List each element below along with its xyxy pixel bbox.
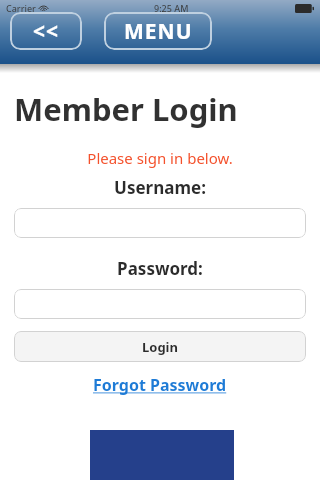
staticText: 9:25 AM (154, 2, 189, 14)
staticText: Carrier (6, 2, 36, 14)
button[interactable] (14, 208, 306, 238)
staticText: Please sign in below. (14, 148, 306, 168)
staticText: MENU (124, 17, 193, 46)
staticText: Forgot Password (93, 374, 227, 396)
button[interactable] (14, 289, 306, 319)
staticText: Username: (14, 176, 306, 199)
button[interactable]: Login (14, 331, 306, 362)
button[interactable]: Forgot Password (14, 374, 306, 396)
button[interactable]: Menu (104, 12, 212, 50)
staticText: Member Login (14, 88, 238, 130)
staticText: Login (142, 338, 178, 356)
staticText: Password: (14, 257, 306, 280)
staticText: << (33, 17, 60, 46)
button[interactable]: Back (10, 12, 82, 50)
